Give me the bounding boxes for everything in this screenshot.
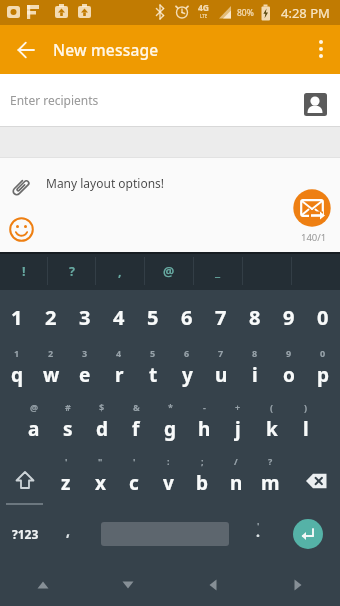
button[interactable]: ,: [96, 252, 144, 290]
button[interactable]: [276, 507, 340, 561]
button[interactable]: #: [51, 399, 85, 453]
button[interactable]: 3: [68, 290, 102, 345]
staticText: 6: [181, 304, 193, 331]
button[interactable]: 8: [238, 345, 272, 399]
staticText: s: [63, 416, 73, 442]
button[interactable]: 4: [102, 290, 136, 345]
button[interactable]: 8: [238, 290, 272, 345]
button[interactable]: ?: [253, 453, 287, 507]
staticText: 3: [79, 304, 91, 331]
button[interactable]: [255, 561, 340, 606]
button[interactable]: ?123: [0, 507, 51, 561]
button[interactable]: :: [151, 453, 185, 507]
button[interactable]: [0, 453, 49, 507]
staticText: 2: [45, 304, 57, 331]
button[interactable]: [298, 28, 340, 70]
staticText: #: [65, 401, 71, 413]
button[interactable]: 2: [34, 290, 68, 345]
button[interactable]: _: [194, 252, 242, 290]
staticText: j: [235, 416, 241, 442]
button[interactable]: $: [85, 399, 119, 453]
button[interactable]: Many layout options!: [46, 158, 340, 208]
staticText: z: [61, 470, 71, 496]
staticText: f: [132, 416, 140, 442]
button[interactable]: [6, 172, 36, 202]
staticText: &: [133, 401, 140, 413]
button[interactable]: 1: [0, 345, 34, 399]
staticText: 0: [317, 304, 329, 331]
button[interactable]: 6: [170, 345, 204, 399]
button[interactable]: ': [240, 507, 276, 561]
button[interactable]: 9: [272, 345, 306, 399]
staticText: u: [215, 362, 228, 388]
staticText: y: [182, 362, 193, 388]
staticText: g: [164, 416, 177, 442]
staticText: :: [167, 455, 170, 467]
staticText: ?123: [12, 526, 39, 542]
button[interactable]: [296, 85, 334, 123]
button[interactable]: 0: [306, 345, 340, 399]
staticText: 4: [113, 304, 125, 331]
staticText: i: [252, 362, 258, 388]
button[interactable]: [243, 252, 291, 290]
button[interactable]: [0, 561, 85, 606]
button[interactable]: (: [255, 399, 289, 453]
staticText: 8: [252, 347, 258, 359]
staticText: 5: [150, 347, 156, 359]
staticText: ): [304, 401, 308, 413]
button[interactable]: [170, 561, 255, 606]
staticText: q: [11, 362, 24, 388]
staticText: New message: [53, 39, 159, 60]
button[interactable]: !: [0, 252, 47, 290]
button[interactable]: Enter recipients: [0, 74, 340, 126]
button[interactable]: ': [117, 453, 151, 507]
button[interactable]: 4: [102, 345, 136, 399]
button[interactable]: 5: [136, 290, 170, 345]
staticText: e: [79, 362, 91, 388]
button[interactable]: ?: [48, 252, 95, 290]
staticText: 7: [218, 347, 224, 359]
staticText: /: [234, 455, 238, 467]
staticText: 0: [320, 347, 326, 359]
button[interactable]: 6: [170, 290, 204, 345]
button[interactable]: [85, 561, 170, 606]
button[interactable]: @: [17, 399, 51, 453]
staticText: (: [270, 401, 274, 413]
staticText: @: [163, 263, 175, 280]
staticText: 9: [283, 304, 295, 331]
button[interactable]: 3: [68, 345, 102, 399]
button[interactable]: 9: [272, 290, 306, 345]
button[interactable]: 0: [306, 290, 340, 345]
button[interactable]: ": [83, 453, 117, 507]
button[interactable]: @: [145, 252, 193, 290]
button[interactable]: 7: [204, 345, 238, 399]
button[interactable]: ): [289, 399, 323, 453]
button[interactable]: +: [221, 399, 255, 453]
staticText: !: [22, 263, 26, 280]
button[interactable]: -: [187, 399, 221, 453]
staticText: 4:28 PM: [281, 4, 330, 21]
staticText: 5: [147, 304, 159, 331]
staticText: ,: [118, 263, 122, 280]
button[interactable]: ,: [51, 507, 85, 561]
staticText: o: [283, 362, 295, 388]
button[interactable]: 1: [0, 290, 34, 345]
button[interactable]: [293, 189, 331, 227]
staticText: 1: [14, 347, 20, 359]
button[interactable]: [4, 28, 48, 72]
button[interactable]: /: [219, 453, 253, 507]
button[interactable]: ;: [185, 453, 219, 507]
button[interactable]: [85, 507, 240, 561]
button[interactable]: [6, 214, 36, 244]
button[interactable]: [292, 252, 340, 290]
button[interactable]: 5: [136, 345, 170, 399]
button[interactable]: 2: [34, 345, 68, 399]
staticText: 4: [116, 347, 122, 359]
button[interactable]: ': [49, 453, 83, 507]
staticText: 4G: [198, 2, 210, 14]
button[interactable]: *: [153, 399, 187, 453]
button[interactable]: &: [119, 399, 153, 453]
button[interactable]: 7: [204, 290, 238, 345]
staticText: p: [317, 362, 330, 388]
button[interactable]: [287, 453, 340, 507]
